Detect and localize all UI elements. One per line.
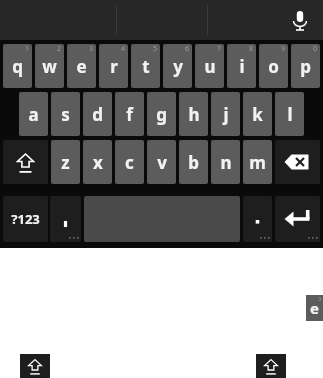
staticText: 7	[217, 44, 222, 54]
button[interactable]: z	[51, 140, 80, 184]
staticText: t	[142, 55, 150, 78]
button[interactable]: o	[259, 44, 288, 88]
staticText: s	[61, 103, 70, 126]
staticText: f	[126, 103, 133, 126]
button[interactable]: Voice input	[285, 5, 315, 35]
button[interactable]: d	[83, 92, 112, 136]
staticText: m	[249, 151, 266, 174]
button[interactable]: s	[51, 92, 80, 136]
button[interactable]: ?123	[3, 196, 48, 242]
staticText: e	[310, 298, 319, 318]
staticText: x	[93, 151, 103, 174]
staticText: 1	[25, 44, 30, 54]
button[interactable]: f	[115, 92, 144, 136]
staticText: d	[92, 103, 103, 126]
staticText: p	[300, 55, 311, 78]
button[interactable]: b	[179, 140, 208, 184]
staticText: z	[61, 151, 70, 174]
staticText: e	[76, 55, 87, 78]
staticText: o	[268, 55, 279, 78]
button[interactable]: Shift	[256, 354, 286, 378]
button[interactable]: r	[99, 44, 128, 88]
staticText: q	[12, 55, 23, 78]
button[interactable]: v	[147, 140, 176, 184]
staticText: g	[156, 103, 167, 126]
staticText: k	[252, 103, 263, 126]
staticText: 5	[153, 44, 158, 54]
button[interactable]: x	[83, 140, 112, 184]
staticText: j	[223, 103, 229, 126]
staticText: y	[173, 55, 183, 78]
staticText: r	[110, 55, 118, 78]
staticText: b	[188, 151, 199, 174]
staticText: 0	[313, 44, 318, 54]
staticText: a	[28, 103, 39, 126]
staticText: ?123	[11, 210, 40, 228]
button[interactable]: u	[195, 44, 224, 88]
button[interactable]: m	[243, 140, 272, 184]
button[interactable]: Period	[243, 196, 272, 242]
staticText: 4	[121, 44, 126, 54]
staticText: v	[157, 151, 167, 174]
button[interactable]: e	[306, 295, 323, 321]
staticText: 3	[89, 44, 94, 54]
button[interactable]: y	[163, 44, 192, 88]
staticText: h	[188, 103, 200, 126]
staticText: w	[42, 55, 57, 78]
button[interactable]: Enter	[275, 196, 320, 242]
staticText: l	[287, 103, 293, 126]
button[interactable]: a	[19, 92, 48, 136]
staticText: u	[204, 55, 216, 78]
staticText: n	[220, 151, 232, 174]
button[interactable]: w	[35, 44, 64, 88]
button[interactable]: g	[147, 92, 176, 136]
button[interactable]: Shift	[3, 140, 48, 184]
staticText: i	[239, 55, 245, 78]
button[interactable]: Shift	[20, 354, 50, 378]
button[interactable]: i	[227, 44, 256, 88]
button[interactable]: l	[275, 92, 304, 136]
button[interactable]: Comma	[50, 196, 81, 242]
staticText: 8	[249, 44, 254, 54]
button[interactable]: p	[291, 44, 320, 88]
button[interactable]: k	[243, 92, 272, 136]
button[interactable]: e	[67, 44, 96, 88]
staticText: 3	[318, 295, 322, 303]
button[interactable]: n	[211, 140, 240, 184]
button[interactable]: Backspace	[275, 140, 320, 184]
staticText: 6	[185, 44, 190, 54]
button[interactable]: j	[211, 92, 240, 136]
button[interactable]: q	[3, 44, 32, 88]
button[interactable]: c	[115, 140, 144, 184]
button[interactable]: h	[179, 92, 208, 136]
staticText: c	[125, 151, 134, 174]
staticText: 9	[281, 44, 286, 54]
staticText: 2	[57, 44, 62, 54]
button[interactable]: t	[131, 44, 160, 88]
